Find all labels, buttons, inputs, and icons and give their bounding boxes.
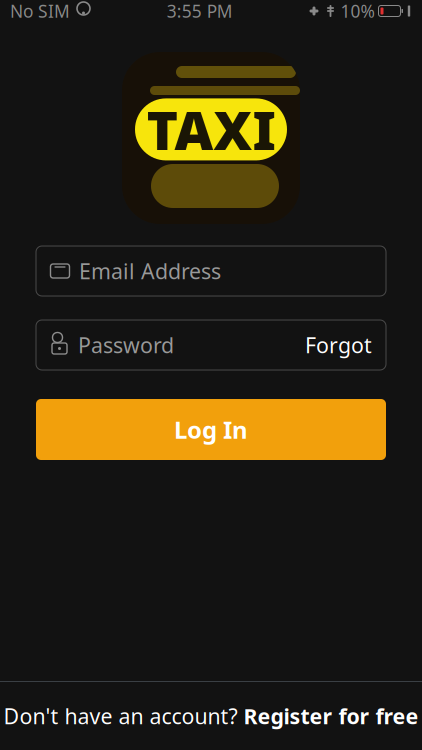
- button[interactable]: Don't have an account?: [0, 682, 422, 750]
- staticText: Email Address: [79, 257, 221, 285]
- staticText: 10%: [340, 0, 374, 22]
- staticText: No SIM: [10, 0, 70, 22]
- staticText: Log In: [174, 414, 248, 445]
- button[interactable]: Log In: [36, 399, 386, 460]
- staticText: 3:55 PM: [167, 0, 233, 22]
- staticText: TAXI: [146, 94, 275, 165]
- staticText: Password: [78, 331, 174, 359]
- button[interactable]: Forgot: [305, 331, 372, 359]
- staticText: Don't have an account?: [3, 702, 243, 730]
- button[interactable]: Email Address: [36, 246, 386, 296]
- staticText: Register for free: [243, 702, 418, 730]
- staticText: Forgot: [305, 331, 372, 359]
